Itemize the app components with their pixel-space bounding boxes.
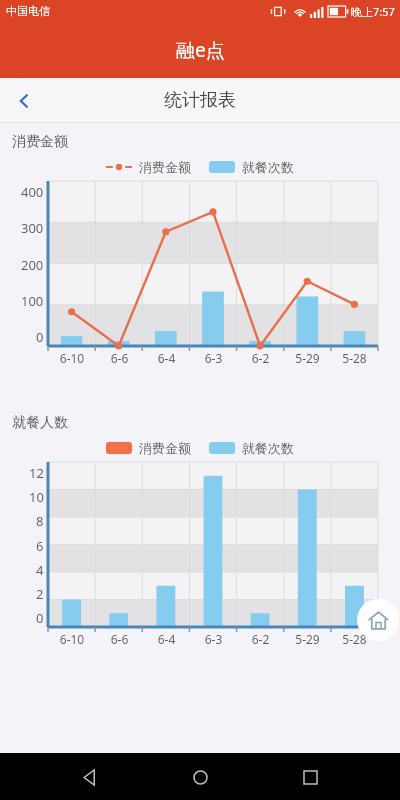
staticText: 消费金额 — [12, 133, 68, 151]
staticText: 6-3 — [190, 631, 237, 647]
staticText: 200 — [21, 256, 44, 274]
staticText: 6-10 — [48, 350, 96, 366]
staticText: 5-29 — [284, 631, 331, 647]
staticText: 就餐次数 — [242, 440, 294, 456]
staticText: 统计报表 — [164, 89, 236, 112]
staticText: 5-28 — [331, 631, 378, 647]
staticText: 6-2 — [237, 631, 284, 647]
staticText: 消费金额 — [139, 440, 191, 456]
staticText: 0 — [36, 609, 44, 627]
staticText: 6-6 — [96, 631, 143, 647]
staticText: 10 — [29, 488, 44, 506]
staticText: 6-4 — [143, 350, 190, 366]
staticText: 100 — [21, 292, 44, 310]
staticText: 4 — [36, 561, 44, 579]
button[interactable]: Recents — [290, 757, 330, 797]
staticText: 融e点 — [176, 37, 225, 63]
staticText: 5-29 — [284, 350, 331, 366]
staticText: 0 — [36, 328, 44, 346]
staticText: 6-10 — [48, 631, 96, 647]
button[interactable]: Back — [70, 757, 110, 797]
staticText: 300 — [21, 219, 44, 237]
staticText: 6-2 — [237, 350, 284, 366]
staticText: 中国电信 — [6, 4, 50, 18]
staticText: 6 — [36, 537, 44, 555]
button[interactable]: Back — [0, 78, 48, 123]
staticText: 6-4 — [143, 631, 190, 647]
staticText: 12 — [29, 464, 44, 482]
button[interactable]: Home — [357, 599, 399, 641]
staticText: 就餐人数 — [12, 414, 68, 432]
staticText: 6-3 — [190, 350, 237, 366]
staticText: 2 — [36, 585, 44, 603]
button[interactable]: Home — [180, 757, 220, 797]
staticText: 8 — [36, 512, 44, 530]
staticText: 就餐次数 — [242, 159, 294, 175]
staticText: 400 — [21, 183, 44, 201]
staticText: 消费金额 — [139, 159, 191, 175]
staticText: 5-28 — [331, 350, 378, 366]
staticText: 6-6 — [96, 350, 143, 366]
staticText: 晚上7:57 — [351, 4, 395, 19]
